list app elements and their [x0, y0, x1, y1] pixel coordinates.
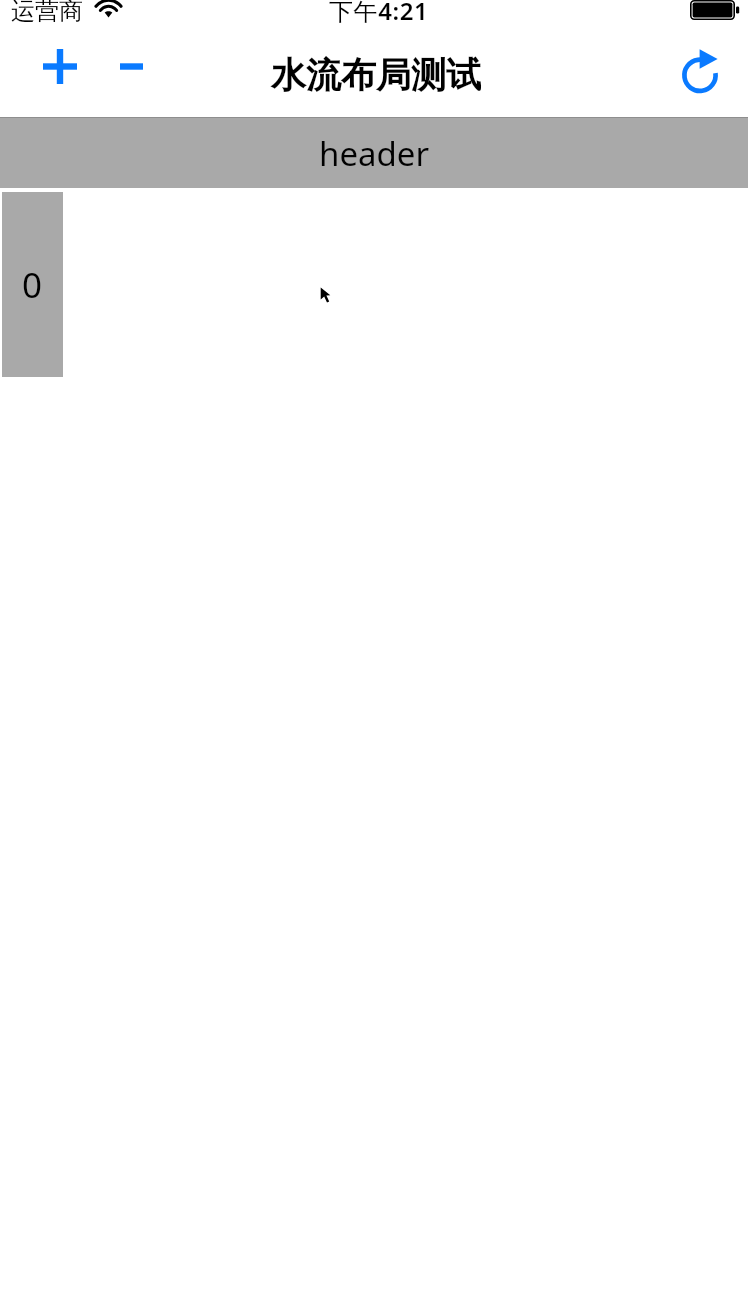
button[interactable]: Refresh [660, 38, 744, 117]
staticText: 下午4:21 [329, 0, 429, 27]
staticText: header [319, 131, 430, 176]
button[interactable]: header [0, 118, 748, 188]
button[interactable]: 0 [2, 192, 63, 377]
button[interactable]: Add item [20, 38, 100, 95]
staticText: 水流布局测试 [271, 53, 481, 97]
other: Wi-Fi [95, 0, 122, 20]
staticText: 运营商 [11, 0, 83, 26]
staticText: 0 [22, 261, 43, 309]
button[interactable]: Remove item [100, 38, 162, 95]
other: Battery full [690, 0, 740, 20]
